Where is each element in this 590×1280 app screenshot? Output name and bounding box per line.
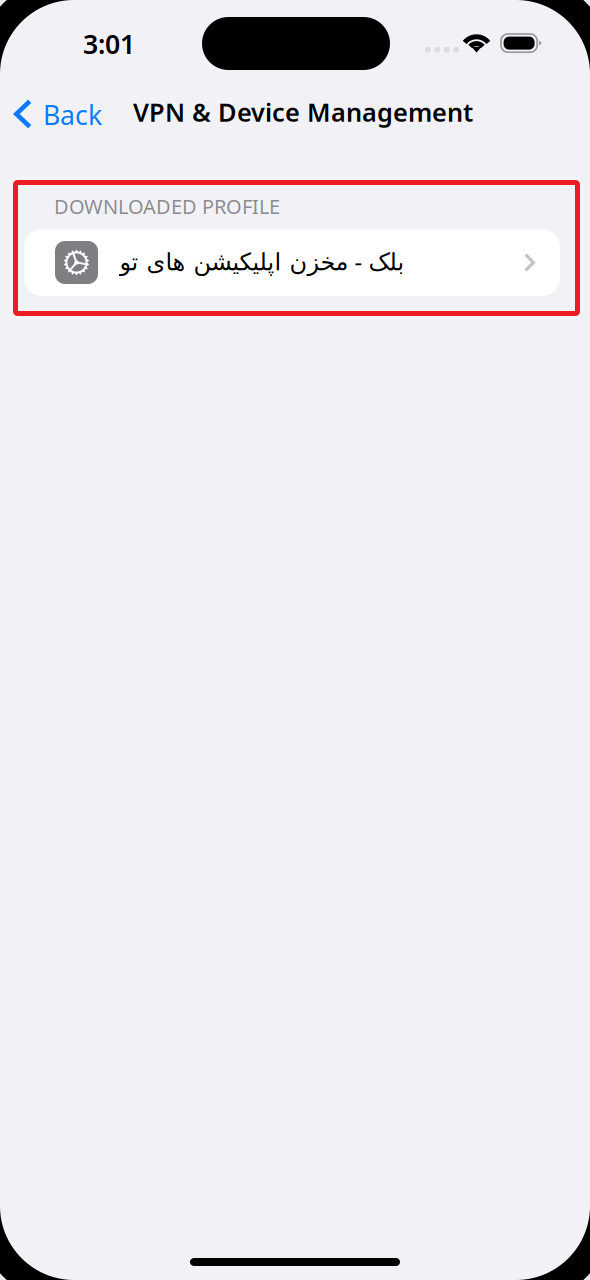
staticText: 3:01: [83, 26, 135, 61]
button[interactable]: Back: [0, 88, 110, 140]
staticText: DOWNLOADED PROFILE: [54, 193, 280, 220]
staticText: بلک - مخزن اپلیکیشن های تو: [119, 245, 404, 277]
staticText: Back: [43, 97, 102, 132]
button[interactable]: بلک - مخزن اپلیکیشن های تو: [24, 229, 560, 296]
staticText: VPN & Device Management: [133, 95, 473, 129]
